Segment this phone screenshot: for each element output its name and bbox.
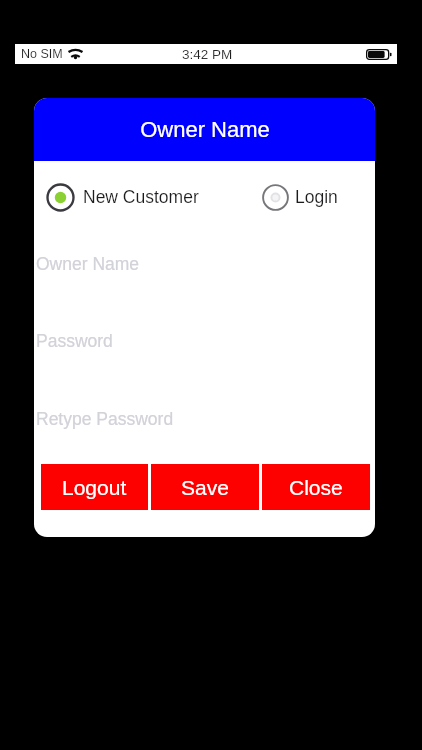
staticText: Login	[295, 187, 338, 207]
button[interactable]: Retype Password	[34, 400, 375, 438]
button[interactable]: Close	[262, 464, 370, 510]
staticText: Owner Name	[140, 117, 270, 142]
staticText: 3:42 PM	[182, 47, 233, 62]
staticText: Save	[181, 476, 229, 499]
staticText: No SIM	[21, 47, 63, 61]
staticText: Logout	[62, 476, 127, 499]
button[interactable]: Password	[34, 322, 375, 360]
staticText: Close	[289, 476, 343, 499]
button[interactable]: Selected	[46, 182, 199, 212]
other: Wi-Fi	[68, 49, 83, 60]
button[interactable]: Not selected	[261, 182, 338, 212]
other: Battery	[366, 49, 393, 60]
button[interactable]: Save	[151, 464, 259, 510]
other: Not selected	[261, 183, 290, 212]
staticText: Password	[36, 331, 113, 351]
staticText: Owner Name	[36, 254, 140, 274]
other: Selected	[46, 183, 75, 212]
staticText: Retype Password	[36, 409, 174, 429]
button[interactable]: Logout	[41, 464, 148, 510]
staticText: New Customer	[83, 187, 199, 207]
button[interactable]: Owner Name	[34, 245, 375, 283]
